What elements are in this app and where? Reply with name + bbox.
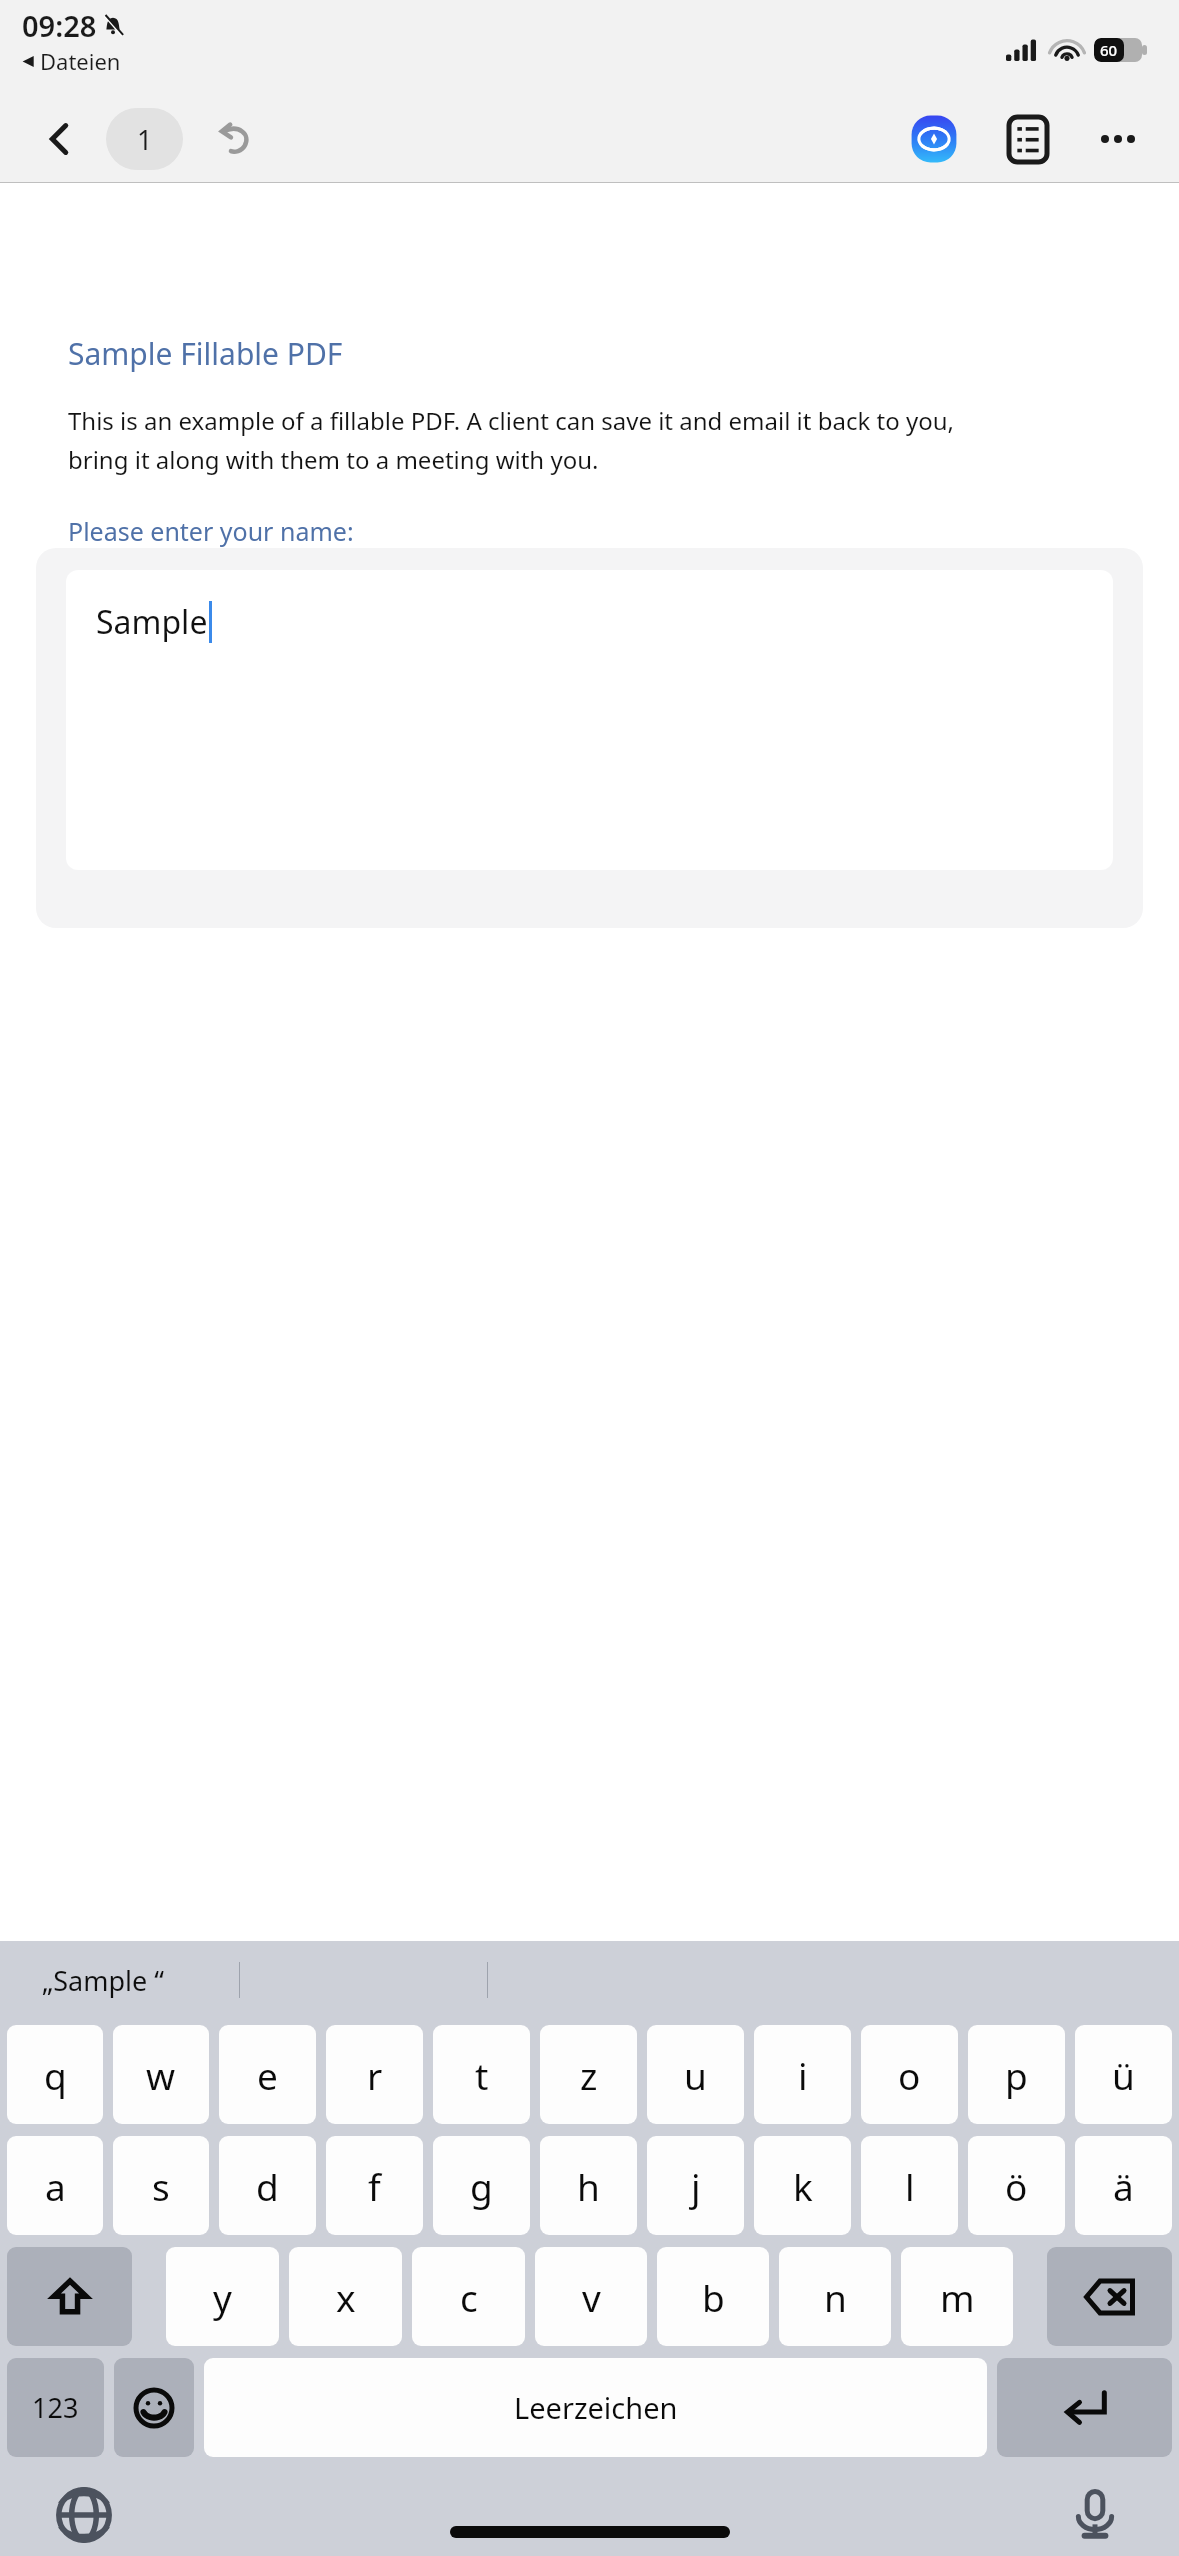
staticText: Please enter your name: (68, 514, 354, 548)
button[interactable]: i (754, 2025, 851, 2124)
staticText: s (152, 2161, 170, 2211)
staticText: 123 (32, 2389, 79, 2426)
button[interactable]: Backspace (1047, 2247, 1172, 2346)
button[interactable]: x (289, 2247, 402, 2346)
staticText: m (940, 2272, 975, 2322)
button[interactable]: Sample (66, 570, 1113, 870)
staticText: l (905, 2161, 915, 2211)
staticText: 1 (137, 121, 153, 158)
button[interactable]: Leerzeichen (204, 2358, 987, 2457)
staticText: Leerzeichen (514, 2388, 678, 2427)
button[interactable]: Emoji (114, 2358, 194, 2457)
button[interactable]: c (412, 2247, 525, 2346)
staticText: j (691, 2161, 701, 2211)
staticText: t (475, 2050, 489, 2100)
button[interactable]: Undo (203, 108, 265, 170)
button[interactable]: z (540, 2025, 637, 2124)
button[interactable]: ö (968, 2136, 1065, 2235)
button[interactable]: 123 (7, 2358, 104, 2457)
staticText: ü (1112, 2050, 1135, 2100)
button[interactable]: More options (1087, 108, 1149, 170)
button[interactable]: t (433, 2025, 530, 2124)
button[interactable]: Switch keyboard (48, 2479, 120, 2551)
button[interactable]: m (901, 2247, 1013, 2346)
staticText: u (684, 2050, 707, 2100)
button[interactable]: q (7, 2025, 103, 2124)
staticText: z (580, 2050, 598, 2100)
button[interactable]: s (113, 2136, 209, 2235)
staticText: ö (1005, 2161, 1028, 2211)
button[interactable]: h (540, 2136, 637, 2235)
staticText: h (577, 2161, 600, 2211)
button[interactable]: u (647, 2025, 744, 2124)
button[interactable]: „Sample “ (42, 1962, 164, 1999)
staticText: b (702, 2272, 725, 2322)
staticText: a (45, 2161, 66, 2211)
button[interactable]: Dictation (1059, 2479, 1131, 2551)
button[interactable]: o (861, 2025, 958, 2124)
button[interactable]: d (219, 2136, 316, 2235)
staticText: d (256, 2161, 279, 2211)
staticText: i (798, 2050, 808, 2100)
staticText: e (257, 2050, 278, 2100)
button[interactable]: Return (997, 2358, 1172, 2457)
staticText: c (460, 2272, 478, 2322)
staticText: y (213, 2272, 232, 2322)
button[interactable]: Outline (997, 108, 1059, 170)
button[interactable]: a (7, 2136, 103, 2235)
staticText: q (44, 2050, 67, 2100)
staticText: o (898, 2050, 921, 2100)
staticText: ä (1113, 2161, 1134, 2211)
button[interactable]: Shift (7, 2247, 132, 2346)
button[interactable]: r (326, 2025, 423, 2124)
button[interactable]: b (657, 2247, 769, 2346)
staticText: p (1005, 2050, 1028, 2100)
button[interactable]: n (779, 2247, 891, 2346)
button[interactable]: p (968, 2025, 1065, 2124)
button[interactable]: Back (30, 109, 90, 169)
button[interactable]: g (433, 2136, 530, 2235)
staticText: Dateien (40, 46, 121, 76)
button[interactable]: y (166, 2247, 279, 2346)
staticText: 60 (1100, 40, 1118, 60)
button[interactable]: f (326, 2136, 423, 2235)
staticText: x (336, 2272, 356, 2322)
button[interactable]: l (861, 2136, 958, 2235)
staticText: w (146, 2050, 176, 2100)
button[interactable]: e (219, 2025, 316, 2124)
button[interactable]: j (647, 2136, 744, 2235)
staticText: This is an example of a fillable PDF. A … (68, 404, 954, 437)
staticText: Sample Fillable PDF (68, 333, 343, 374)
staticText: bring it along with them to a meeting wi… (68, 443, 599, 476)
staticText: v (582, 2272, 601, 2322)
button[interactable]: ä (1075, 2136, 1172, 2235)
button[interactable]: k (754, 2136, 851, 2235)
staticText: g (470, 2161, 493, 2211)
staticText: r (367, 2050, 383, 2100)
button[interactable]: AI Assistant (903, 108, 965, 170)
staticText: k (793, 2161, 813, 2211)
staticText: f (368, 2161, 381, 2211)
staticText: n (824, 2272, 847, 2322)
button[interactable]: ü (1075, 2025, 1172, 2124)
staticText: Sample (96, 600, 208, 644)
button[interactable]: 1 (106, 108, 183, 170)
staticText: 09:28 (22, 6, 97, 45)
button[interactable]: v (535, 2247, 647, 2346)
button[interactable]: w (113, 2025, 209, 2124)
